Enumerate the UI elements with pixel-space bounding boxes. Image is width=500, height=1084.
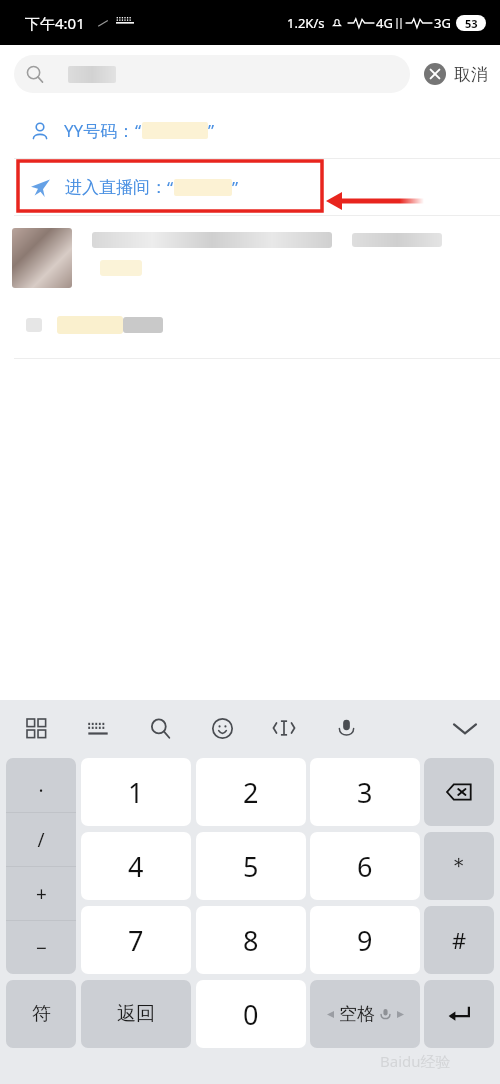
button[interactable]: . bbox=[6, 758, 76, 812]
button[interactable]: Emoji bbox=[206, 712, 238, 744]
button[interactable]: Cursor move bbox=[268, 712, 300, 744]
staticText: “ bbox=[167, 176, 174, 199]
staticText: 取消 bbox=[454, 64, 488, 85]
button[interactable]: / bbox=[6, 813, 76, 866]
button[interactable]: 取消 bbox=[454, 64, 488, 85]
staticText: 8 bbox=[243, 922, 259, 959]
staticText: . bbox=[38, 772, 44, 798]
button[interactable]: 符 bbox=[6, 980, 76, 1048]
button[interactable]: Backspace bbox=[424, 758, 494, 826]
button[interactable]: Panels bbox=[20, 712, 52, 744]
staticText: 6 bbox=[357, 848, 373, 885]
staticText: “ bbox=[135, 119, 142, 142]
button[interactable]: 1 bbox=[81, 758, 191, 826]
staticText: 3G bbox=[434, 14, 451, 32]
button[interactable]: Clear bbox=[418, 57, 452, 91]
button[interactable]: ＊ bbox=[424, 832, 494, 900]
staticText: # bbox=[452, 925, 467, 955]
staticText: 1 bbox=[128, 774, 144, 811]
staticText: 0 bbox=[243, 996, 259, 1033]
button[interactable]: 0 bbox=[196, 980, 306, 1048]
button[interactable]: Enter bbox=[424, 980, 494, 1048]
staticText: YY号码： bbox=[64, 119, 135, 142]
staticText: 下午4:01 bbox=[25, 13, 85, 33]
staticText: 2 bbox=[243, 774, 259, 811]
button[interactable]: 空格 bbox=[310, 980, 420, 1048]
button[interactable]: # bbox=[424, 906, 494, 974]
staticText: 返回 bbox=[117, 1002, 155, 1026]
staticText: 进入直播间： bbox=[65, 177, 167, 198]
button[interactable]: 2 bbox=[196, 758, 306, 826]
button[interactable] bbox=[0, 218, 500, 358]
button[interactable]: + bbox=[6, 867, 76, 920]
button[interactable]: 返回 bbox=[81, 980, 191, 1048]
staticText: + bbox=[36, 881, 47, 907]
staticText: ＊ bbox=[448, 852, 470, 880]
button[interactable]: 进入直播间： bbox=[0, 176, 500, 199]
button[interactable]: Voice input bbox=[330, 712, 362, 744]
button[interactable]: 7 bbox=[81, 906, 191, 974]
staticText: 空格 bbox=[339, 1003, 375, 1026]
staticText: ” bbox=[232, 176, 239, 199]
button[interactable]: Search bbox=[144, 712, 176, 744]
staticText: 4 bbox=[128, 848, 144, 885]
staticText: 5 bbox=[243, 848, 259, 885]
staticText: Baidu经验 bbox=[380, 1051, 451, 1071]
button[interactable]: 9 bbox=[310, 906, 420, 974]
button[interactable] bbox=[14, 55, 410, 93]
button[interactable]: Keyboard layout bbox=[82, 712, 114, 744]
button[interactable]: 8 bbox=[196, 906, 306, 974]
button[interactable]: 6 bbox=[310, 832, 420, 900]
staticText: 符 bbox=[32, 1002, 51, 1026]
staticText: 7 bbox=[128, 922, 144, 959]
staticText: ” bbox=[208, 119, 215, 142]
button[interactable]: 5 bbox=[196, 832, 306, 900]
button[interactable]: 4 bbox=[81, 832, 191, 900]
staticText: − bbox=[36, 935, 47, 961]
button[interactable]: Hide keyboard bbox=[448, 711, 482, 745]
button[interactable]: YY号码： bbox=[0, 103, 500, 158]
button[interactable]: 3 bbox=[310, 758, 420, 826]
button[interactable]: − bbox=[6, 921, 76, 974]
staticText: / bbox=[37, 827, 45, 853]
staticText: 1.2K/s bbox=[287, 14, 325, 32]
staticText: 4G bbox=[376, 14, 393, 32]
staticText: 53 bbox=[465, 16, 478, 31]
staticText: 3 bbox=[357, 774, 373, 811]
staticText: 9 bbox=[357, 922, 373, 959]
